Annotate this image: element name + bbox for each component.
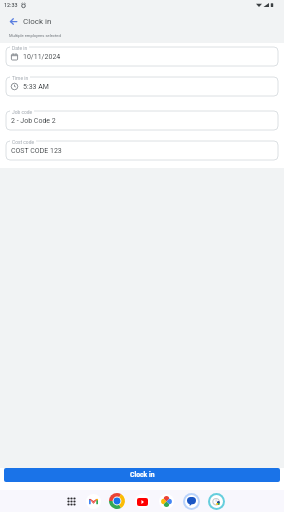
button[interactable]: Gmail xyxy=(82,490,104,512)
button[interactable]: Chrome xyxy=(106,490,128,512)
staticText: 10/11/2024 xyxy=(23,53,61,61)
button[interactable]: 10/11/2024 xyxy=(6,47,278,66)
staticText: Date in xyxy=(12,45,28,51)
staticText: 2 - Job Code 2 xyxy=(11,117,56,125)
button[interactable]: COST CODE 123 xyxy=(6,141,278,160)
staticText: 12:33 xyxy=(4,2,18,8)
button[interactable]: 5:33 AM xyxy=(6,77,278,96)
button[interactable]: Photos xyxy=(155,490,177,512)
button[interactable]: Messages xyxy=(180,490,202,512)
button[interactable]: 2 - Job Code 2 xyxy=(6,111,278,130)
button[interactable]: Clock in app xyxy=(205,490,227,512)
staticText: Cost code xyxy=(12,139,35,145)
button[interactable]: All apps xyxy=(60,490,82,512)
staticText: Clock in xyxy=(130,471,155,479)
button[interactable]: Back xyxy=(4,12,22,30)
staticText: Time in xyxy=(12,75,29,81)
staticText: Multiple employees selected xyxy=(9,33,61,38)
staticText: COST CODE 123 xyxy=(11,147,62,155)
staticText: Clock in xyxy=(23,17,52,26)
button[interactable]: YouTube xyxy=(131,490,153,512)
button[interactable]: Clock in xyxy=(4,468,280,482)
staticText: Job code xyxy=(12,109,33,115)
staticText: 5:33 AM xyxy=(23,83,49,91)
